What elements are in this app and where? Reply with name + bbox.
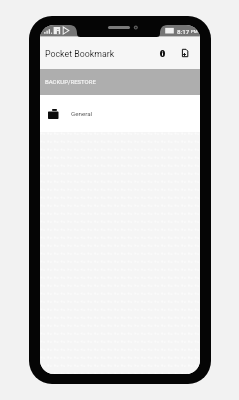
staticText: PM — [191, 29, 198, 34]
button[interactable]: General — [40, 95, 200, 132]
staticText: 8:17 — [177, 28, 190, 35]
button[interactable]: Info — [152, 43, 172, 63]
staticText: Pocket Bookmark — [45, 49, 115, 59]
staticText: General — [71, 110, 93, 117]
button[interactable]: Add note — [175, 43, 195, 63]
staticText: BACKUP/RESTORE — [45, 78, 96, 85]
